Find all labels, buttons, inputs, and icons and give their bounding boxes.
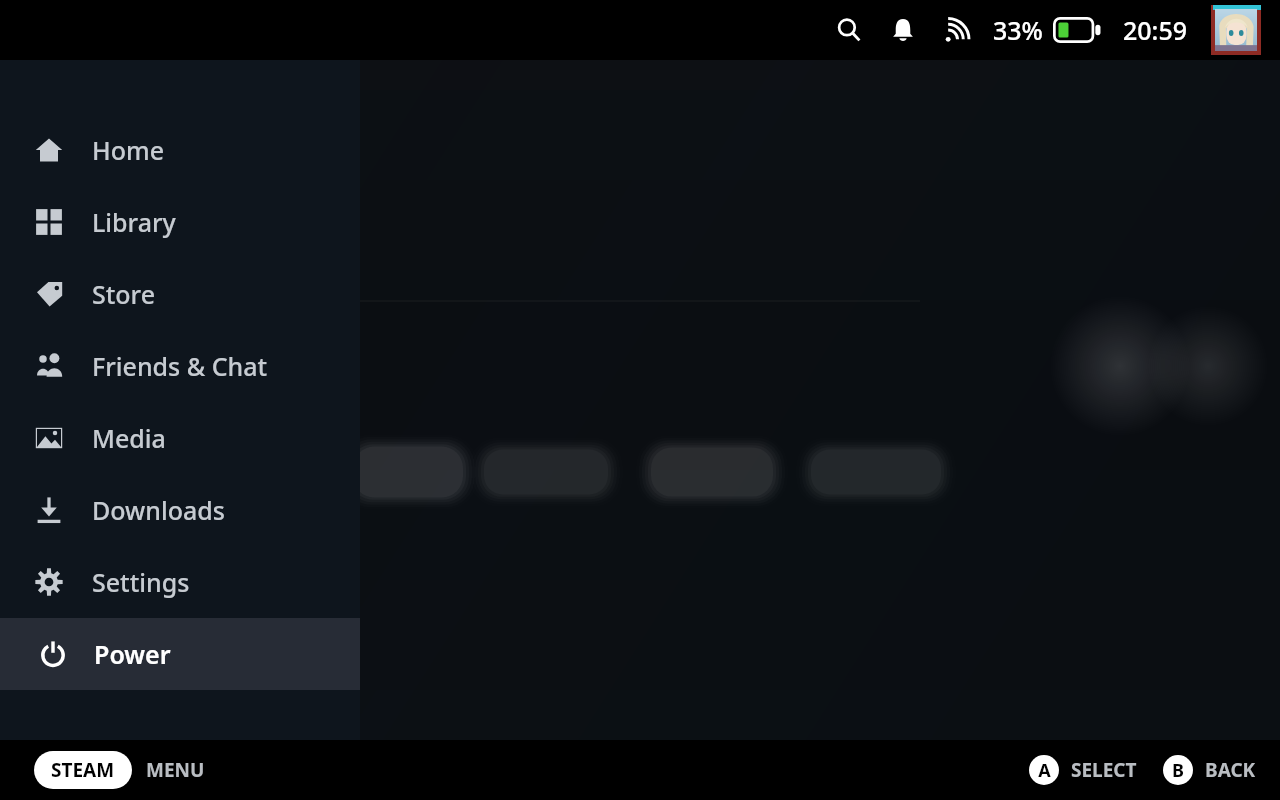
button[interactable]: STEAM xyxy=(34,751,132,789)
button[interactable]: Profile xyxy=(1210,4,1262,56)
staticText: Media xyxy=(92,421,166,455)
staticText: Settings xyxy=(92,565,190,599)
staticText: 20:59 xyxy=(1123,13,1188,47)
staticText: Friends & Chat xyxy=(92,349,268,383)
staticText: A xyxy=(1038,758,1051,783)
staticText: STEAM xyxy=(51,757,115,783)
button[interactable]: Home xyxy=(0,114,360,186)
staticText: Home xyxy=(92,133,165,167)
button[interactable]: Library xyxy=(0,186,360,258)
button[interactable]: Store xyxy=(0,258,360,330)
staticText: Store xyxy=(92,277,156,311)
staticText: SELECT xyxy=(1071,757,1137,783)
staticText: Library xyxy=(92,205,176,239)
staticText: 33% xyxy=(993,13,1043,47)
staticText: BACK xyxy=(1205,757,1256,783)
button[interactable]: Search xyxy=(827,8,871,52)
staticText: MENU xyxy=(146,757,205,783)
button[interactable]: Friends & Chat xyxy=(0,330,360,402)
staticText: B xyxy=(1172,758,1184,783)
button[interactable]: Notifications xyxy=(881,8,925,52)
button[interactable]: Power xyxy=(0,618,360,690)
button[interactable]: Network xyxy=(935,8,979,52)
button[interactable]: Settings xyxy=(0,546,360,618)
staticText: Power xyxy=(94,637,171,671)
button[interactable]: Downloads xyxy=(0,474,360,546)
staticText: Downloads xyxy=(92,493,225,527)
button[interactable]: Media xyxy=(0,402,360,474)
button[interactable]: A xyxy=(1029,755,1137,785)
button[interactable]: B xyxy=(1163,755,1256,785)
